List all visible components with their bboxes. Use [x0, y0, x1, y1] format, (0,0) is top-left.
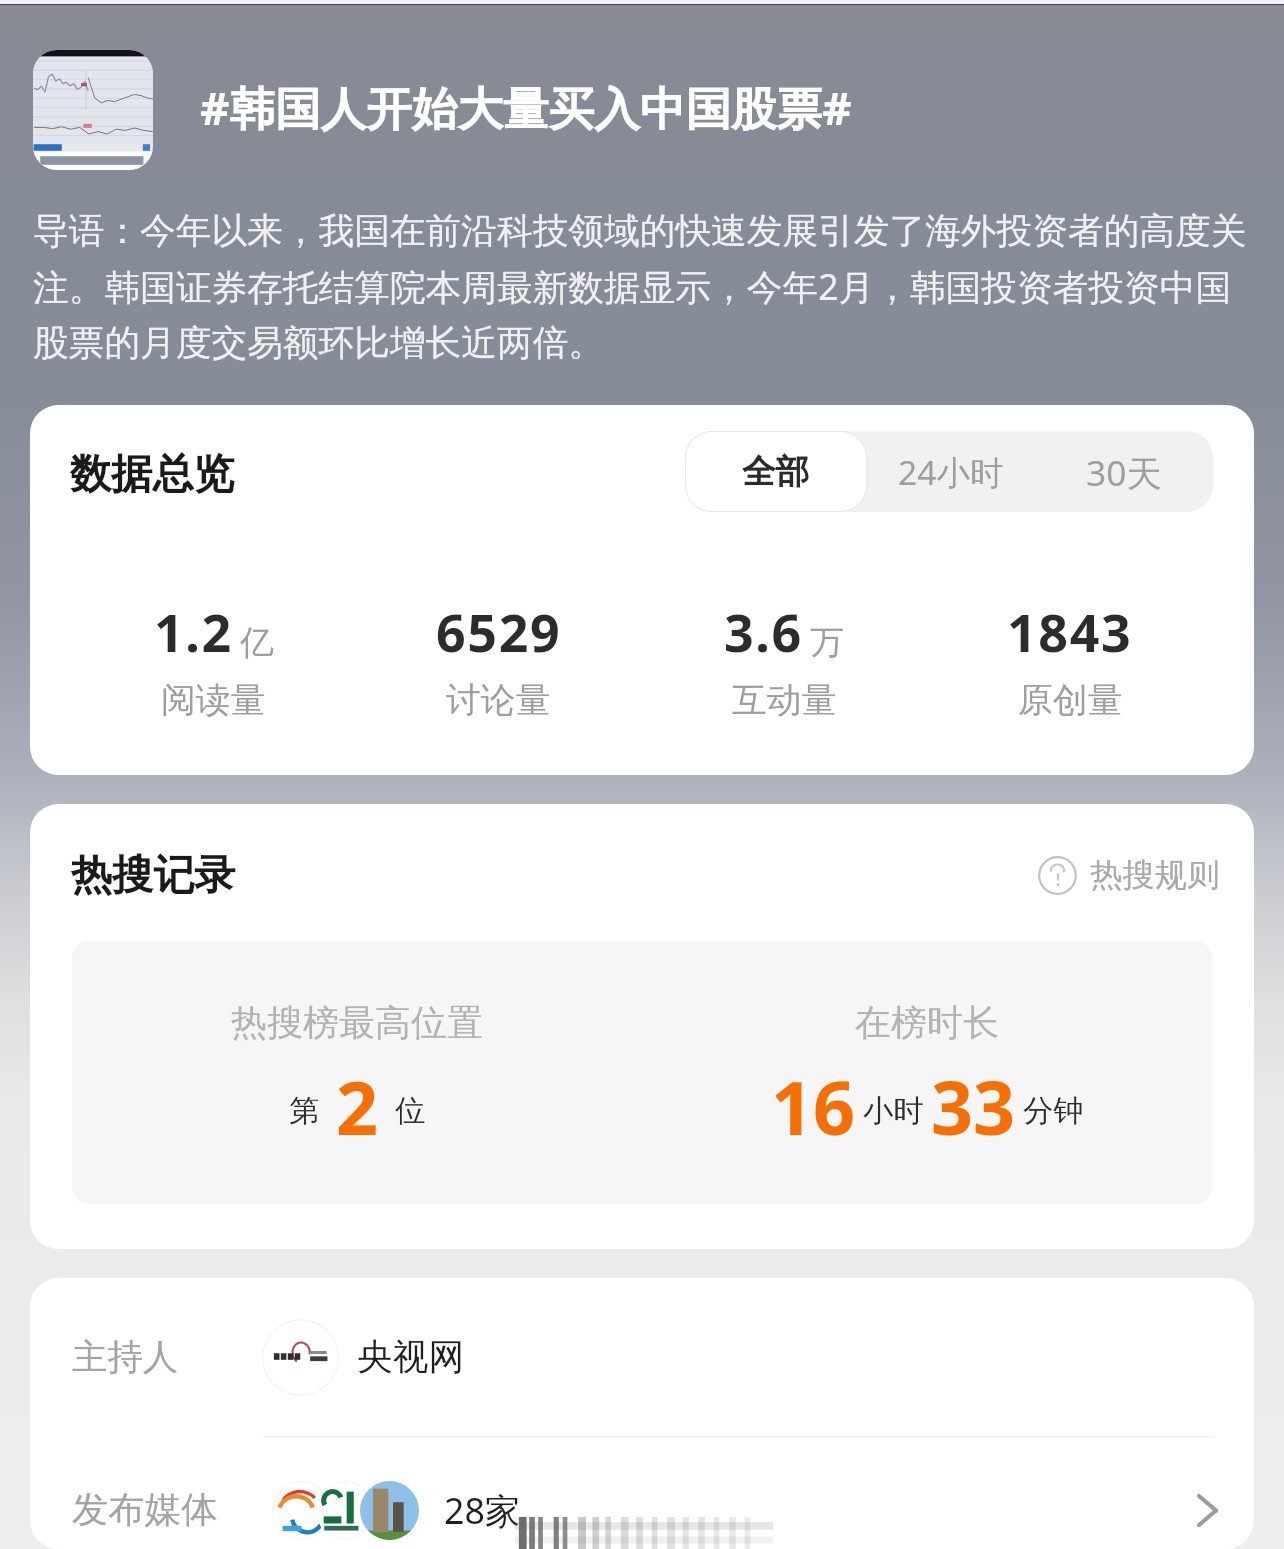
staticText: 全部	[742, 451, 810, 493]
button[interactable]: 全部	[686, 432, 866, 511]
staticText: 央视网	[357, 1335, 465, 1380]
button[interactable]: 主持人	[30, 1278, 1254, 1436]
staticText: 第	[289, 1092, 320, 1130]
staticText: 阅读量	[161, 678, 266, 722]
staticText: 亿	[240, 621, 274, 664]
button[interactable]: 热搜规则	[1038, 855, 1220, 896]
button[interactable]: 24小时	[867, 431, 1035, 512]
staticText: 小时	[863, 1092, 924, 1130]
staticText: 33	[931, 1056, 1016, 1156]
staticText: 28家	[444, 1486, 521, 1535]
staticText: 导语：今年以来，我国在前沿科技领域的快速发展引发了海外投资者的高度关注。韩国证券…	[33, 209, 1251, 366]
staticText: 1.2	[154, 597, 233, 668]
staticText: 发布媒体	[72, 1487, 218, 1533]
staticText: 24小时	[898, 449, 1004, 495]
staticText: 2	[336, 1056, 379, 1156]
staticText: 热搜榜最高位置	[231, 1000, 483, 1045]
staticText: 热搜记录	[71, 849, 236, 901]
staticText: 互动量	[732, 678, 837, 722]
staticText: 3.6	[724, 597, 803, 668]
staticText: 位	[395, 1092, 426, 1130]
staticText: #韩国人开始大量买入中国股票#	[200, 76, 852, 138]
button[interactable]: 30天	[1035, 431, 1213, 512]
staticText: 16	[771, 1056, 856, 1156]
staticText: 1843	[1007, 597, 1133, 668]
staticText: 30天	[1086, 448, 1162, 496]
staticText: 在榜时长	[855, 1000, 999, 1045]
staticText: 讨论量	[446, 678, 551, 722]
other: 查看全部发布媒体	[1199, 1496, 1216, 1525]
staticText: 万	[810, 621, 844, 664]
staticText: 原创量	[1018, 678, 1123, 722]
staticText: 主持人	[72, 1335, 179, 1380]
button[interactable]: 话题配图	[0, 50, 1284, 170]
button[interactable]: 发布媒体	[30, 1437, 1254, 1549]
staticText: 热搜规则	[1090, 855, 1220, 896]
staticText: 数据总览	[70, 448, 235, 500]
staticText: 分钟	[1023, 1092, 1084, 1130]
staticText: 6529	[436, 597, 562, 668]
other: 话题配图	[33, 50, 153, 170]
